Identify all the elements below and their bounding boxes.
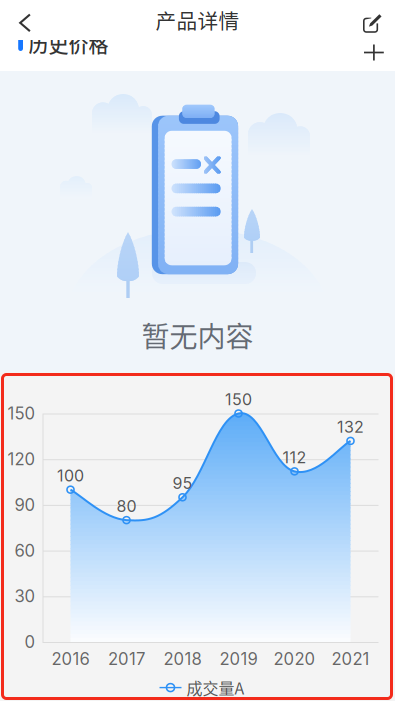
staticText: 112: [282, 448, 306, 467]
staticText: 暂无内容: [141, 315, 253, 355]
staticText: 132: [337, 417, 364, 437]
staticText: 80: [116, 496, 136, 516]
button[interactable]: Back: [9, 3, 41, 42]
staticText: 产品详情: [155, 5, 239, 35]
staticText: 历史价格: [28, 29, 108, 58]
button[interactable]: Add: [355, 35, 393, 69]
staticText: 2018: [163, 649, 201, 669]
staticText: 30: [14, 586, 35, 606]
staticText: 0: [24, 632, 35, 652]
staticText: 2021: [331, 649, 369, 669]
staticText: 120: [7, 449, 35, 469]
staticText: 60: [14, 540, 35, 561]
staticText: 90: [14, 495, 35, 515]
staticText: 100: [57, 466, 84, 485]
staticText: 2020: [273, 649, 315, 669]
staticText: 95: [172, 474, 192, 493]
staticText: 2016: [51, 649, 89, 669]
staticText: 150: [225, 390, 252, 409]
staticText: 2017: [108, 649, 145, 669]
button[interactable]: Edit: [352, 4, 392, 44]
staticText: 成交量A: [186, 676, 244, 699]
staticText: 2019: [219, 649, 257, 669]
staticText: 150: [7, 403, 35, 424]
